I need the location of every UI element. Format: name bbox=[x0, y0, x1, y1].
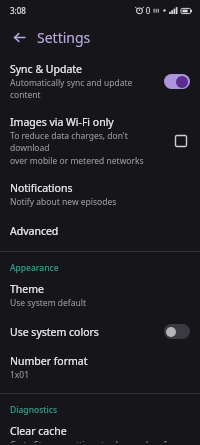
button[interactable]: Sync and update toggle, on bbox=[164, 74, 190, 89]
button[interactable]: Sync & Update bbox=[0, 54, 200, 103]
staticText: 3:08 bbox=[10, 5, 26, 16]
button[interactable]: Images via Wi-Fi only bbox=[0, 103, 200, 169]
staticText: Number format bbox=[10, 354, 88, 368]
button[interactable]: Clear cache bbox=[0, 416, 200, 445]
staticText: over mobile or metered networks bbox=[10, 155, 144, 167]
staticText: Automatically sync and update content bbox=[10, 77, 158, 101]
button[interactable]: Advanced bbox=[0, 210, 200, 240]
staticText: Go to Storage settings to clear cache of… bbox=[10, 439, 190, 443]
staticText: Advanced bbox=[10, 224, 59, 238]
button[interactable]: Use system colors bbox=[0, 311, 200, 341]
button[interactable]: Notifications bbox=[0, 169, 200, 210]
staticText: Use system colors bbox=[10, 325, 99, 339]
staticText: Images via Wi-Fi only bbox=[10, 115, 114, 129]
button[interactable]: Theme bbox=[0, 274, 200, 311]
staticText: 1x01 bbox=[10, 369, 30, 381]
button[interactable]: Images via Wi-Fi only checkbox, unchecke… bbox=[172, 132, 190, 150]
staticText: Clear cache bbox=[10, 424, 67, 438]
staticText: Notify about new episodes bbox=[10, 196, 117, 208]
staticText: Sync & Update bbox=[10, 62, 82, 76]
staticText: To reduce data charges, don't download bbox=[10, 130, 166, 154]
staticText: Diagnostics bbox=[10, 404, 58, 416]
staticText: Appearance bbox=[10, 262, 59, 274]
staticText: Settings bbox=[37, 28, 91, 47]
button[interactable]: Back bbox=[6, 24, 32, 50]
staticText: Theme bbox=[10, 282, 44, 296]
button[interactable]: Number format bbox=[0, 341, 200, 383]
button[interactable]: Use system colors toggle, off bbox=[164, 324, 190, 339]
staticText: Use system default bbox=[10, 297, 87, 309]
staticText: Notifications bbox=[10, 181, 73, 195]
